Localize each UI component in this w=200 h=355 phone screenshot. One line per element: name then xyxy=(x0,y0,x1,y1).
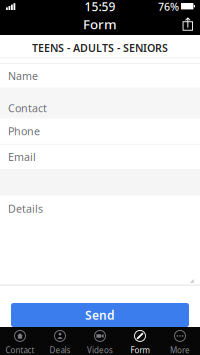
button[interactable]: Deals xyxy=(40,327,80,355)
staticText: Phone xyxy=(8,124,40,138)
staticText: Name xyxy=(8,69,38,83)
button[interactable]: Videos xyxy=(80,327,120,355)
staticText: Form xyxy=(130,345,149,355)
staticText: More xyxy=(170,345,190,355)
button[interactable]: Send xyxy=(11,303,189,327)
staticText: Deals xyxy=(49,345,70,355)
staticText: Email xyxy=(8,150,36,164)
button[interactable]: Form xyxy=(120,327,160,355)
staticText: Details xyxy=(8,201,43,216)
staticText: 15:59 xyxy=(84,0,115,14)
staticText: Contact xyxy=(8,101,47,115)
button[interactable]: Share xyxy=(180,14,196,34)
staticText: Videos xyxy=(87,345,113,355)
staticText: TEENS - ADULTS - SENIORS xyxy=(32,41,168,55)
button[interactable]: More xyxy=(160,327,200,355)
staticText: Send xyxy=(85,307,115,323)
button[interactable]: Contact xyxy=(0,327,40,355)
staticText: 76% xyxy=(158,0,179,14)
staticText: Contact xyxy=(5,345,34,355)
staticText: Form xyxy=(83,15,117,33)
